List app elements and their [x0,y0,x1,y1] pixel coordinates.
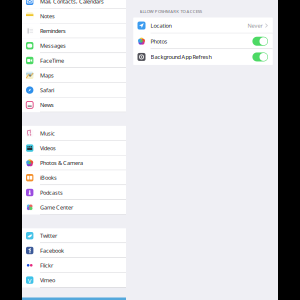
staticText: Notes [40,12,55,20]
staticText: Music [40,129,55,137]
button[interactable]: Safari [22,83,126,97]
button[interactable]: Messages [22,38,126,53]
button[interactable]: Photos [133,33,272,49]
staticText: Facebook [40,247,64,254]
staticText: Never [247,22,262,29]
button[interactable]: News [22,97,126,112]
button[interactable]: iBooks [22,170,126,185]
staticText: Safari [40,86,54,94]
button[interactable]: Flickr [22,258,126,273]
button[interactable]: Notes [22,9,126,23]
button[interactable]: Podcasts [22,185,126,200]
button[interactable]: Reminders [22,23,126,38]
button[interactable]: Maps [22,68,126,83]
button[interactable]: Location [133,18,272,33]
staticText: Vimeo [40,276,55,284]
staticText: Location [150,22,171,29]
staticText: Mail, Contacts, Calendars [40,0,104,5]
button[interactable]: Game Center [22,200,126,215]
staticText: Background App Refresh [150,53,211,61]
button[interactable]: Background App Refresh [133,49,272,65]
staticText: Reminders [40,27,66,35]
staticText: Videos [40,144,56,152]
button[interactable]: Music [22,126,126,141]
staticText: ALLOW POSHMARK TO ACCESS [139,8,202,14]
staticText: Messages [40,42,66,49]
staticText: FaceTime [40,57,64,64]
staticText: Flickr [40,261,53,269]
staticText: v [28,275,32,285]
button[interactable]: Facebook [22,243,126,258]
staticText: Twitter [40,232,57,239]
staticText: Maps [40,71,54,79]
staticText: Game Center [40,203,73,211]
button[interactable]: Mail, Contacts, Calendars [22,0,126,9]
button[interactable]: Videos [22,141,126,155]
button[interactable]: Twitter [22,228,126,243]
staticText: Photos [150,37,167,45]
staticText: Podcasts [40,189,63,196]
staticText: iBooks [40,174,57,181]
button[interactable]: FaceTime [22,53,126,68]
button[interactable]: v [22,273,126,287]
staticText: Photos & Camera [40,159,83,167]
button[interactable]: Photos & Camera [22,155,126,170]
staticText: News [40,101,54,109]
